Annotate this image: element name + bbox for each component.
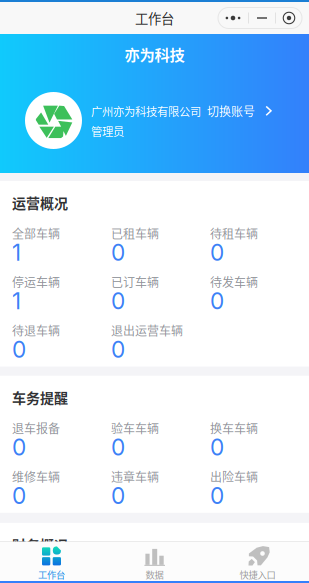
staticText: 违章车辆 <box>111 468 159 485</box>
staticText: 0 <box>111 239 125 266</box>
staticText: 已订车辆 <box>111 273 159 290</box>
button[interactable]: 切换账号 <box>207 102 272 120</box>
staticText: 退出运营车辆 <box>111 321 183 339</box>
staticText: 待发车辆 <box>210 273 258 290</box>
button[interactable]: 退出运营车辆 <box>111 321 210 359</box>
button[interactable]: 数据 <box>103 542 206 581</box>
staticText: 0 <box>111 336 125 363</box>
button[interactable]: 违章车辆 <box>111 467 210 506</box>
button[interactable]: Close <box>276 7 302 28</box>
staticText: 0 <box>111 287 125 315</box>
button[interactable]: 待退车辆 <box>12 321 111 359</box>
button[interactable]: 验车车辆 <box>111 418 210 457</box>
staticText: 退车报备 <box>12 419 60 437</box>
staticText: 验车车辆 <box>111 419 159 437</box>
button[interactable]: More <box>218 7 248 28</box>
staticText: 已租车辆 <box>111 224 159 242</box>
staticText: 广州亦为科技有限公司 <box>91 103 201 119</box>
button[interactable]: 已订车辆 <box>111 272 210 311</box>
staticText: 全部车辆 <box>12 224 60 242</box>
staticText: 出险车辆 <box>210 468 258 485</box>
button[interactable]: 待发车辆 <box>210 272 309 311</box>
staticText: 维修车辆 <box>12 468 60 485</box>
staticText: 工作台 <box>135 8 174 28</box>
staticText: 数据 <box>145 568 163 581</box>
button[interactable]: 全部车辆 <box>12 224 111 262</box>
button[interactable]: Minimize <box>249 7 275 28</box>
staticText: 0 <box>210 434 224 461</box>
button[interactable]: 快捷入口 <box>206 542 309 581</box>
staticText: 车务提醒 <box>12 387 68 407</box>
staticText: 管理员 <box>91 123 124 139</box>
staticText: 0 <box>12 336 26 363</box>
staticText: 本月利润 <box>210 566 258 583</box>
button[interactable]: 已租车辆 <box>111 224 210 262</box>
staticText: 运营概况 <box>12 192 68 213</box>
staticText: 本月支出 <box>111 566 159 583</box>
button[interactable]: 维修车辆 <box>12 467 111 506</box>
staticText: 停运车辆 <box>12 273 60 290</box>
button[interactable]: 换车车辆 <box>210 418 309 457</box>
staticText: 1 <box>12 239 21 266</box>
button[interactable]: 工作台 <box>0 542 103 581</box>
staticText: 1 <box>12 287 21 315</box>
staticText: 本月收入 <box>12 566 60 583</box>
staticText: 亦为科技 <box>124 43 184 65</box>
staticText: 工作台 <box>38 568 65 581</box>
button[interactable]: 待租车辆 <box>210 224 309 262</box>
staticText: 切换账号 <box>207 102 255 120</box>
staticText: 0 <box>210 482 224 509</box>
staticText: 待退车辆 <box>12 321 60 339</box>
button[interactable]: 本月收入 <box>12 566 111 583</box>
staticText: 财务概况 <box>12 534 68 555</box>
staticText: 快捷入口 <box>239 568 275 581</box>
button[interactable]: 停运车辆 <box>12 272 111 311</box>
button[interactable]: 退车报备 <box>12 418 111 457</box>
staticText: 换车车辆 <box>210 419 258 437</box>
staticText: 0 <box>12 434 26 461</box>
staticText: 0 <box>12 482 26 509</box>
staticText: 0 <box>111 482 125 509</box>
staticText: 0 <box>111 434 125 461</box>
staticText: 0 <box>210 239 224 266</box>
button[interactable]: 出险车辆 <box>210 467 309 506</box>
button[interactable]: 本月利润 <box>210 566 309 583</box>
button[interactable]: 本月支出 <box>111 566 210 583</box>
staticText: 待租车辆 <box>210 224 258 242</box>
staticText: 0 <box>210 287 224 315</box>
